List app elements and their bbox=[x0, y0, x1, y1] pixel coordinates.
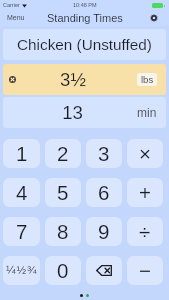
button[interactable]: Settings bbox=[148, 12, 160, 24]
button[interactable]: + bbox=[127, 178, 163, 207]
button[interactable]: Delete bbox=[86, 256, 122, 285]
staticText: 8 bbox=[57, 220, 69, 243]
staticText: 4 bbox=[16, 181, 28, 204]
staticText: 3½ bbox=[60, 69, 86, 90]
staticText: Chicken (Unstuffed) bbox=[17, 36, 152, 53]
staticText: min bbox=[137, 106, 157, 119]
staticText: × bbox=[139, 142, 151, 165]
button[interactable]: 7 bbox=[3, 217, 40, 246]
staticText: 6 bbox=[98, 181, 110, 204]
staticText: 5 bbox=[57, 181, 69, 204]
button[interactable]: Page 2 bbox=[86, 294, 89, 297]
button[interactable]: 6 bbox=[86, 178, 122, 207]
button[interactable]: 4 bbox=[3, 178, 40, 207]
button[interactable]: 1 bbox=[3, 139, 40, 168]
button[interactable]: Menu bbox=[0, 11, 32, 25]
button[interactable]: Fractions bbox=[3, 256, 40, 285]
button[interactable]: × bbox=[127, 139, 163, 168]
staticText: Standing Times bbox=[47, 12, 123, 24]
staticText: 2 bbox=[57, 142, 69, 165]
button[interactable]: 9 bbox=[86, 217, 122, 246]
button[interactable]: Clear bbox=[9, 76, 16, 83]
staticText: 9 bbox=[98, 220, 110, 243]
button[interactable]: Clear bbox=[3, 64, 166, 95]
staticText: 1 bbox=[16, 142, 28, 165]
staticText: Carrier bbox=[3, 2, 20, 8]
staticText: + bbox=[139, 181, 151, 204]
button[interactable]: − bbox=[127, 256, 163, 285]
button[interactable]: 5 bbox=[45, 178, 81, 207]
staticText: lbs bbox=[141, 74, 154, 85]
staticText: 13 bbox=[62, 102, 83, 123]
staticText: ¼ ½ ¾ bbox=[6, 264, 37, 277]
staticText: 10:48 PM bbox=[73, 2, 97, 8]
button[interactable]: ÷ bbox=[127, 217, 163, 246]
staticText: 0 bbox=[57, 259, 69, 282]
button[interactable]: 8 bbox=[45, 217, 81, 246]
button[interactable]: Page 1 bbox=[80, 294, 83, 297]
staticText: ÷ bbox=[139, 220, 151, 243]
staticText: 3 bbox=[98, 142, 110, 165]
staticText: 7 bbox=[16, 220, 28, 243]
button[interactable]: 3 bbox=[86, 139, 122, 168]
button[interactable]: 0 bbox=[45, 256, 81, 285]
staticText: − bbox=[139, 259, 151, 282]
button[interactable]: 2 bbox=[45, 139, 81, 168]
button[interactable]: 13 bbox=[3, 97, 166, 128]
button[interactable]: Chicken (Unstuffed) bbox=[3, 29, 166, 60]
staticText: Menu bbox=[7, 14, 25, 22]
